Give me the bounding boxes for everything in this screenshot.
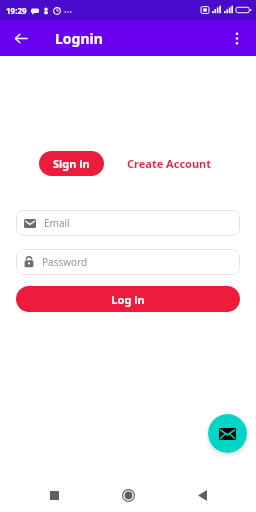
button[interactable]: Create Account <box>121 151 218 176</box>
staticText: Sign in <box>53 156 90 171</box>
button[interactable]: Back <box>165 478 239 512</box>
button[interactable]: Compose message <box>208 414 247 453</box>
staticText: Create Account <box>127 156 212 171</box>
button[interactable]: Log in <box>16 286 240 312</box>
staticText: 19:29 <box>6 5 27 16</box>
button[interactable]: Email <box>16 210 240 236</box>
staticText: Lognin <box>55 29 103 48</box>
button[interactable]: Password <box>16 249 240 275</box>
button[interactable]: Back <box>8 25 34 51</box>
staticText: Password <box>42 255 88 269</box>
button[interactable]: Home <box>91 478 165 512</box>
button[interactable]: More options <box>224 25 250 51</box>
button[interactable]: Sign in <box>39 151 104 176</box>
staticText: Log in <box>111 292 145 307</box>
staticText: Email <box>44 216 70 230</box>
button[interactable]: Recents <box>17 478 91 512</box>
